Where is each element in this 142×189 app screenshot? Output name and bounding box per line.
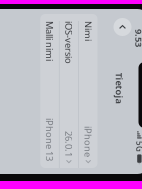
staticText: 26.0.1 [84, 67, 110, 79]
button[interactable]: Nimi [0, 44, 121, 63]
staticText: iPhone 13 [71, 86, 114, 99]
staticText: iPhone [79, 48, 110, 60]
button[interactable]: Malli nimi [0, 83, 121, 102]
button[interactable]: iOS-versio [0, 64, 121, 82]
staticText: Tietoja [25, 16, 56, 29]
staticText: 5G [94, 0, 105, 8]
